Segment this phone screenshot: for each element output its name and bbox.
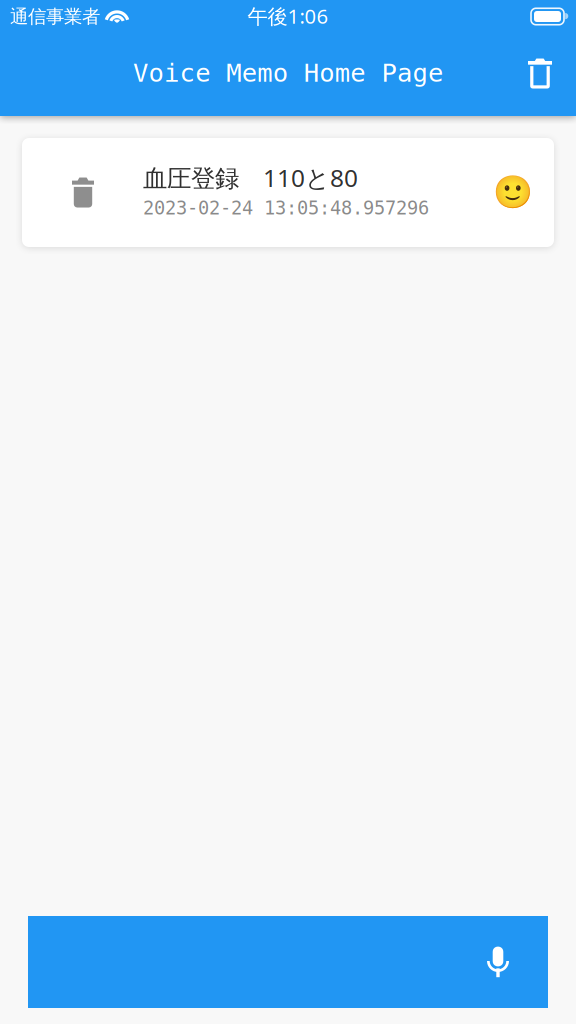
staticText: 2023-02-24 13:05:48.957296 — [143, 197, 429, 219]
button[interactable]: Delete memo — [47, 152, 119, 232]
staticText: Voice Memo Home Page — [133, 58, 443, 88]
staticText: 通信事業者 — [10, 5, 100, 28]
staticText: 🙂 — [493, 174, 533, 211]
button[interactable]: Record voice memo — [28, 916, 548, 1008]
staticText: 午後1:06 — [247, 2, 328, 30]
button[interactable]: 血圧登録 110と80 — [22, 138, 554, 247]
button[interactable]: Delete all memos — [514, 42, 566, 106]
staticText: 血圧登録 110と80 — [143, 161, 358, 194]
